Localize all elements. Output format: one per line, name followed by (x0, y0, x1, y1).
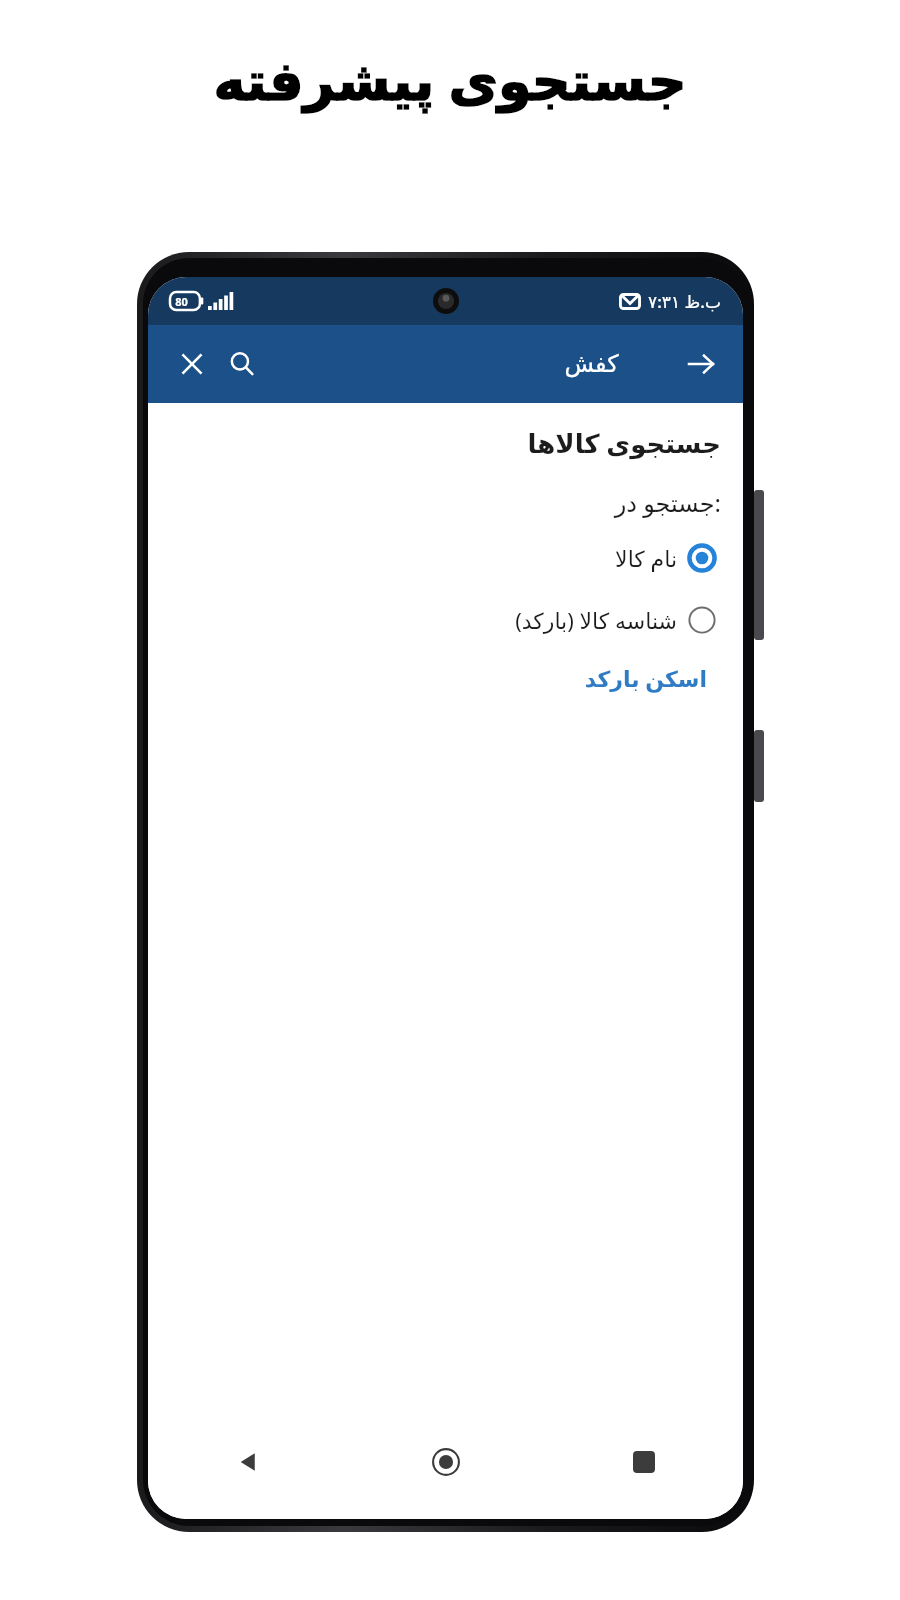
staticText: کفش (564, 350, 619, 378)
staticText: اسکن بارکد (584, 663, 707, 693)
button[interactable]: Home (347, 1423, 545, 1501)
staticText: شناسه کالا (بارکد) (515, 605, 677, 635)
staticText: جستجوی پیشرفته (213, 42, 687, 116)
button[interactable]: Back (675, 338, 727, 390)
button[interactable]: Search (218, 340, 266, 388)
button[interactable]: اسکن بارکد (578, 659, 713, 697)
button[interactable]: Back (148, 1423, 347, 1501)
staticText: نام کالا (615, 543, 677, 573)
button[interactable]: نام کالا (611, 539, 721, 577)
staticText: 80 (175, 294, 188, 309)
button[interactable]: Recent apps (545, 1423, 743, 1501)
staticText: جستجو در: (614, 486, 721, 519)
staticText: ۷:۳۱ ب.ظ (648, 290, 721, 313)
button[interactable]: Clear (168, 340, 216, 388)
button[interactable]: شناسه کالا (بارکد) (511, 601, 721, 639)
staticText: جستجوی کالاها (527, 425, 721, 460)
